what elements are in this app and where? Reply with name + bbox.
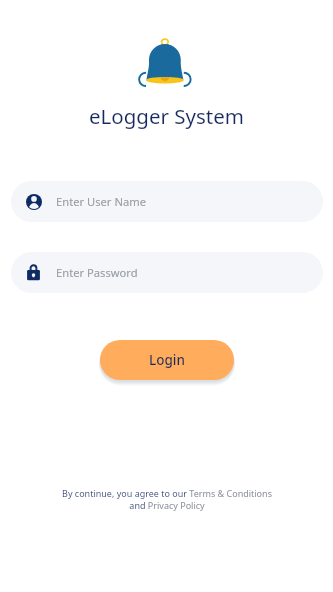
staticText: eLogger System	[89, 102, 244, 130]
button[interactable]: Enter Password	[11, 252, 323, 293]
staticText: Enter Password	[56, 265, 138, 280]
button[interactable]: Enter User Name	[11, 181, 323, 222]
staticText: Enter User Name	[56, 194, 146, 209]
staticText: Login	[149, 351, 185, 369]
button[interactable]: Login	[100, 340, 234, 380]
staticText: By continue, you agree to our Terms & Co…	[59, 487, 275, 512]
